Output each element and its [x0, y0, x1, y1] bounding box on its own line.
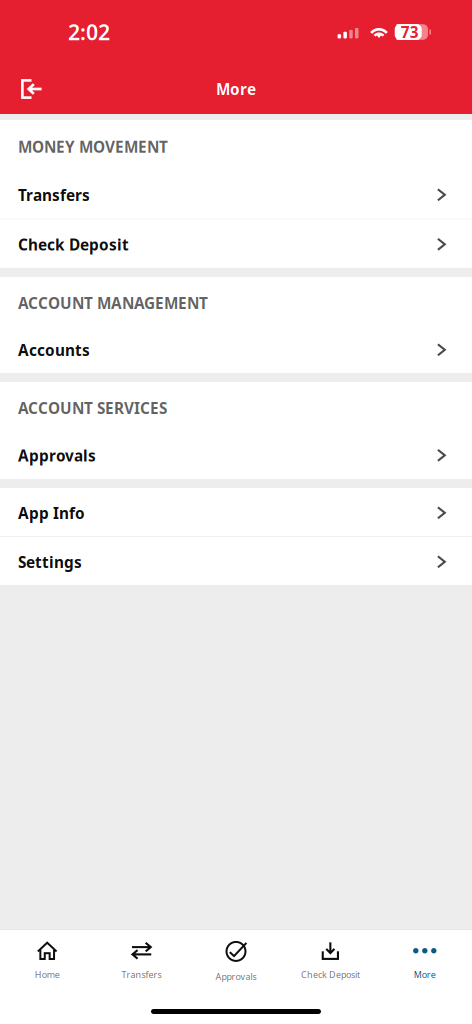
staticText: More — [216, 79, 256, 99]
staticText: Home — [35, 968, 60, 981]
button[interactable]: Approvals — [0, 430, 472, 479]
button[interactable]: Check Deposit — [283, 930, 378, 990]
staticText: More — [414, 968, 436, 981]
staticText: ACCOUNT MANAGEMENT — [18, 293, 208, 313]
staticText: MONEY MOVEMENT — [18, 136, 168, 157]
staticText: Approvals — [215, 970, 256, 983]
staticText: 73 — [401, 22, 419, 42]
staticText: Check Deposit — [301, 968, 360, 981]
staticText: 2:02 — [68, 17, 110, 47]
button[interactable]: Approvals — [189, 930, 283, 990]
staticText: Accounts — [18, 340, 90, 360]
button[interactable]: Transfers — [0, 169, 472, 218]
button[interactable]: Accounts — [0, 325, 472, 373]
staticText: Approvals — [18, 445, 96, 466]
button[interactable]: Transfers — [94, 930, 189, 990]
button[interactable]: More — [378, 930, 472, 990]
staticText: Transfers — [122, 968, 162, 981]
staticText: Transfers — [18, 185, 90, 205]
button[interactable]: Sign out — [13, 70, 51, 108]
button[interactable]: App Info — [0, 488, 472, 536]
button[interactable]: Check Deposit — [0, 219, 472, 267]
staticText: Settings — [18, 552, 82, 572]
staticText: Check Deposit — [18, 234, 129, 255]
button[interactable]: Home — [0, 930, 94, 990]
staticText: ACCOUNT SERVICES — [18, 398, 167, 418]
button[interactable]: Settings — [0, 537, 472, 585]
staticText: App Info — [18, 503, 85, 523]
